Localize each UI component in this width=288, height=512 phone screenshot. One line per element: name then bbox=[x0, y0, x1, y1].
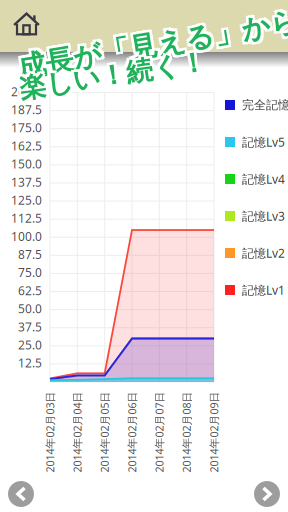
staticText: 25.0 bbox=[18, 337, 42, 353]
button[interactable]: Next bbox=[254, 481, 280, 507]
staticText: 楽しい！続く！ bbox=[19, 71, 208, 104]
staticText: 楽しい！続く！ bbox=[15, 71, 204, 104]
staticText: 成長が「見える」から bbox=[17, 49, 288, 84]
staticText: 成長が「見える」から bbox=[12, 48, 288, 83]
staticText: 成長が「見える」から bbox=[13, 53, 288, 87]
staticText: 125.0 bbox=[11, 192, 42, 208]
staticText: 楽しい！続く！ bbox=[19, 75, 208, 108]
staticText: 2014年02月03日 bbox=[9, 425, 90, 439]
staticText: 成長が「見える」から bbox=[13, 49, 288, 84]
staticText: 成長が「見える」から bbox=[12, 53, 288, 88]
staticText: 成長が「見える」から bbox=[12, 51, 288, 85]
staticText: 記憶Lv2 bbox=[242, 245, 285, 261]
staticText: 137.5 bbox=[11, 174, 42, 190]
staticText: 完全記憶 bbox=[242, 98, 288, 112]
staticText: 2014年02月08日 bbox=[146, 425, 227, 439]
staticText: 楽しい！続く！ bbox=[17, 70, 206, 103]
staticText: 楽しい！続く！ bbox=[14, 75, 203, 108]
staticText: 楽しい！続く！ bbox=[19, 75, 208, 107]
staticText: 175.0 bbox=[11, 120, 42, 136]
staticText: 87.5 bbox=[18, 246, 42, 262]
staticText: 楽しい！続く！ bbox=[14, 70, 203, 103]
staticText: 100.0 bbox=[11, 228, 42, 244]
staticText: 200.0 bbox=[11, 83, 42, 99]
staticText: 成長が「見える」から bbox=[17, 51, 288, 85]
staticText: 187.5 bbox=[11, 102, 42, 117]
staticText: 記憶Lv4 bbox=[242, 171, 285, 187]
staticText: 2014年02月04日 bbox=[37, 425, 118, 439]
staticText: 楽しい！続く！ bbox=[15, 75, 204, 107]
staticText: 成長が「見える」から bbox=[17, 53, 288, 88]
staticText: 記憶Lv3 bbox=[242, 208, 285, 224]
staticText: 37.5 bbox=[18, 319, 42, 335]
staticText: 62.5 bbox=[18, 283, 42, 298]
staticText: 112.5 bbox=[11, 210, 42, 226]
staticText: 楽しい！続く！ bbox=[14, 73, 203, 106]
staticText: 楽しい！続く！ bbox=[17, 73, 206, 106]
staticText: 成長が「見える」から bbox=[17, 53, 288, 87]
staticText: 50.0 bbox=[18, 301, 42, 317]
staticText: 75.0 bbox=[18, 264, 42, 280]
staticText: 楽しい！続く！ bbox=[17, 75, 206, 108]
staticText: 成長が「見える」から bbox=[15, 48, 288, 83]
staticText: 150.0 bbox=[11, 156, 42, 172]
staticText: 成長が「見える」から bbox=[15, 53, 288, 88]
staticText: 2014年02月07日 bbox=[119, 425, 200, 439]
staticText: 2014年02月06日 bbox=[91, 425, 172, 439]
button[interactable]: Home bbox=[6, 7, 47, 44]
staticText: 162.5 bbox=[11, 138, 42, 154]
button[interactable]: Previous bbox=[8, 481, 34, 507]
staticText: 記憶Lv1 bbox=[242, 282, 285, 298]
staticText: 楽しい！続く！ bbox=[19, 70, 208, 103]
staticText: 12.5 bbox=[18, 355, 42, 371]
staticText: 成長が「見える」から bbox=[15, 51, 288, 85]
staticText: 楽しい！続く！ bbox=[19, 73, 208, 106]
staticText: 成長が「見える」から bbox=[17, 48, 288, 83]
staticText: 2014年02月09日 bbox=[173, 425, 254, 439]
staticText: 2014年02月05日 bbox=[64, 425, 145, 439]
staticText: 記憶Lv5 bbox=[242, 134, 285, 150]
